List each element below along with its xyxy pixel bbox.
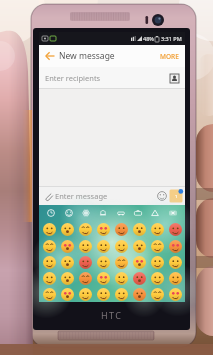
button[interactable]: Emoji 8 [167, 221, 183, 237]
button[interactable]: Emoji 40 [167, 286, 183, 302]
button[interactable]: Emoji 15 [149, 238, 165, 254]
button[interactable]: Attach [42, 190, 54, 202]
button[interactable]: Emoji 2 [59, 221, 75, 237]
staticText: MORE [160, 52, 179, 61]
staticText: Enter message [55, 191, 108, 201]
button[interactable]: Emoji 26 [59, 270, 75, 286]
staticText: 1 [175, 194, 178, 199]
button[interactable]: Emoji 38 [131, 286, 147, 302]
staticText: New message [59, 50, 115, 62]
staticText: 3:31 PM [161, 35, 182, 42]
button[interactable]: Emoji 12 [95, 238, 111, 254]
button[interactable]: Emoji 6 [131, 221, 147, 237]
button[interactable]: Emoji 32 [167, 270, 183, 286]
button[interactable]: Emoji 34 [59, 286, 75, 302]
button[interactable]: Emoji 11 [77, 238, 93, 254]
button[interactable]: Emoji 4 [95, 221, 111, 237]
button[interactable]: Emoji [155, 189, 168, 202]
button[interactable]: Emoji 28 [95, 270, 111, 286]
button[interactable]: Emoji 25 [41, 270, 57, 286]
button[interactable]: Emoji 29 [113, 270, 129, 286]
button[interactable]: Recent [45, 207, 57, 219]
button[interactable]: Activity [115, 207, 127, 219]
button[interactable]: Smileys [63, 207, 75, 219]
button[interactable]: Emoji 23 [149, 254, 165, 270]
button[interactable]: Emoji 33 [41, 286, 57, 302]
button[interactable]: Emoji 27 [77, 270, 93, 286]
button[interactable]: MORE [159, 49, 180, 64]
button[interactable]: Objects [149, 207, 161, 219]
button[interactable]: Emoji 18 [59, 254, 75, 270]
button[interactable]: Emoji 10 [59, 238, 75, 254]
button[interactable]: Emoji 16 [167, 238, 183, 254]
button[interactable]: Emoji 21 [113, 254, 129, 270]
button[interactable]: Travel [132, 207, 144, 219]
button[interactable]: Emoji 35 [77, 286, 93, 302]
button[interactable]: Backspace [167, 207, 179, 219]
button[interactable]: Emoji 37 [113, 286, 129, 302]
button[interactable]: Emoji 14 [131, 238, 147, 254]
button[interactable]: Food [97, 207, 109, 219]
button[interactable]: Back [43, 49, 57, 63]
button[interactable]: Emoji 19 [77, 254, 93, 270]
staticText: HTC [101, 309, 123, 321]
button[interactable]: Emoji 31 [149, 270, 165, 286]
button[interactable]: Send [169, 189, 183, 203]
button[interactable]: Emoji 39 [149, 286, 165, 302]
staticText: 48% [143, 35, 154, 42]
button[interactable]: Add recipient [168, 72, 180, 84]
button[interactable]: Emoji 9 [41, 238, 57, 254]
button[interactable]: Emoji 24 [167, 254, 183, 270]
button[interactable]: Emoji 7 [149, 221, 165, 237]
button[interactable]: Emoji 13 [113, 238, 129, 254]
button[interactable]: Emoji 17 [41, 254, 57, 270]
staticText: Enter recipients [45, 73, 101, 83]
button[interactable]: Nature [80, 207, 92, 219]
button[interactable]: Emoji 30 [131, 270, 147, 286]
button[interactable]: Emoji 36 [95, 286, 111, 302]
button[interactable]: Emoji 5 [113, 221, 129, 237]
button[interactable]: Emoji 20 [95, 254, 111, 270]
button[interactable]: Emoji 3 [77, 221, 93, 237]
button[interactable]: Emoji 1 [41, 221, 57, 237]
button[interactable]: Emoji 22 [131, 254, 147, 270]
